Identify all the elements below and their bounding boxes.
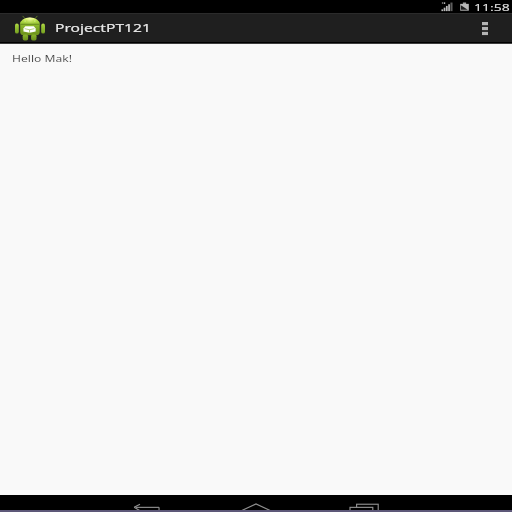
staticText: 11:58 [474, 0, 510, 12]
button[interactable]: Recent apps [338, 495, 396, 512]
button[interactable]: More options [470, 13, 500, 44]
staticText: Hello Mak! [12, 52, 72, 64]
button[interactable]: Back [118, 495, 176, 512]
button[interactable]: ProjectPT121 [0, 13, 170, 44]
button[interactable]: Home [227, 495, 285, 512]
staticText: ProjectPT121 [55, 20, 151, 36]
